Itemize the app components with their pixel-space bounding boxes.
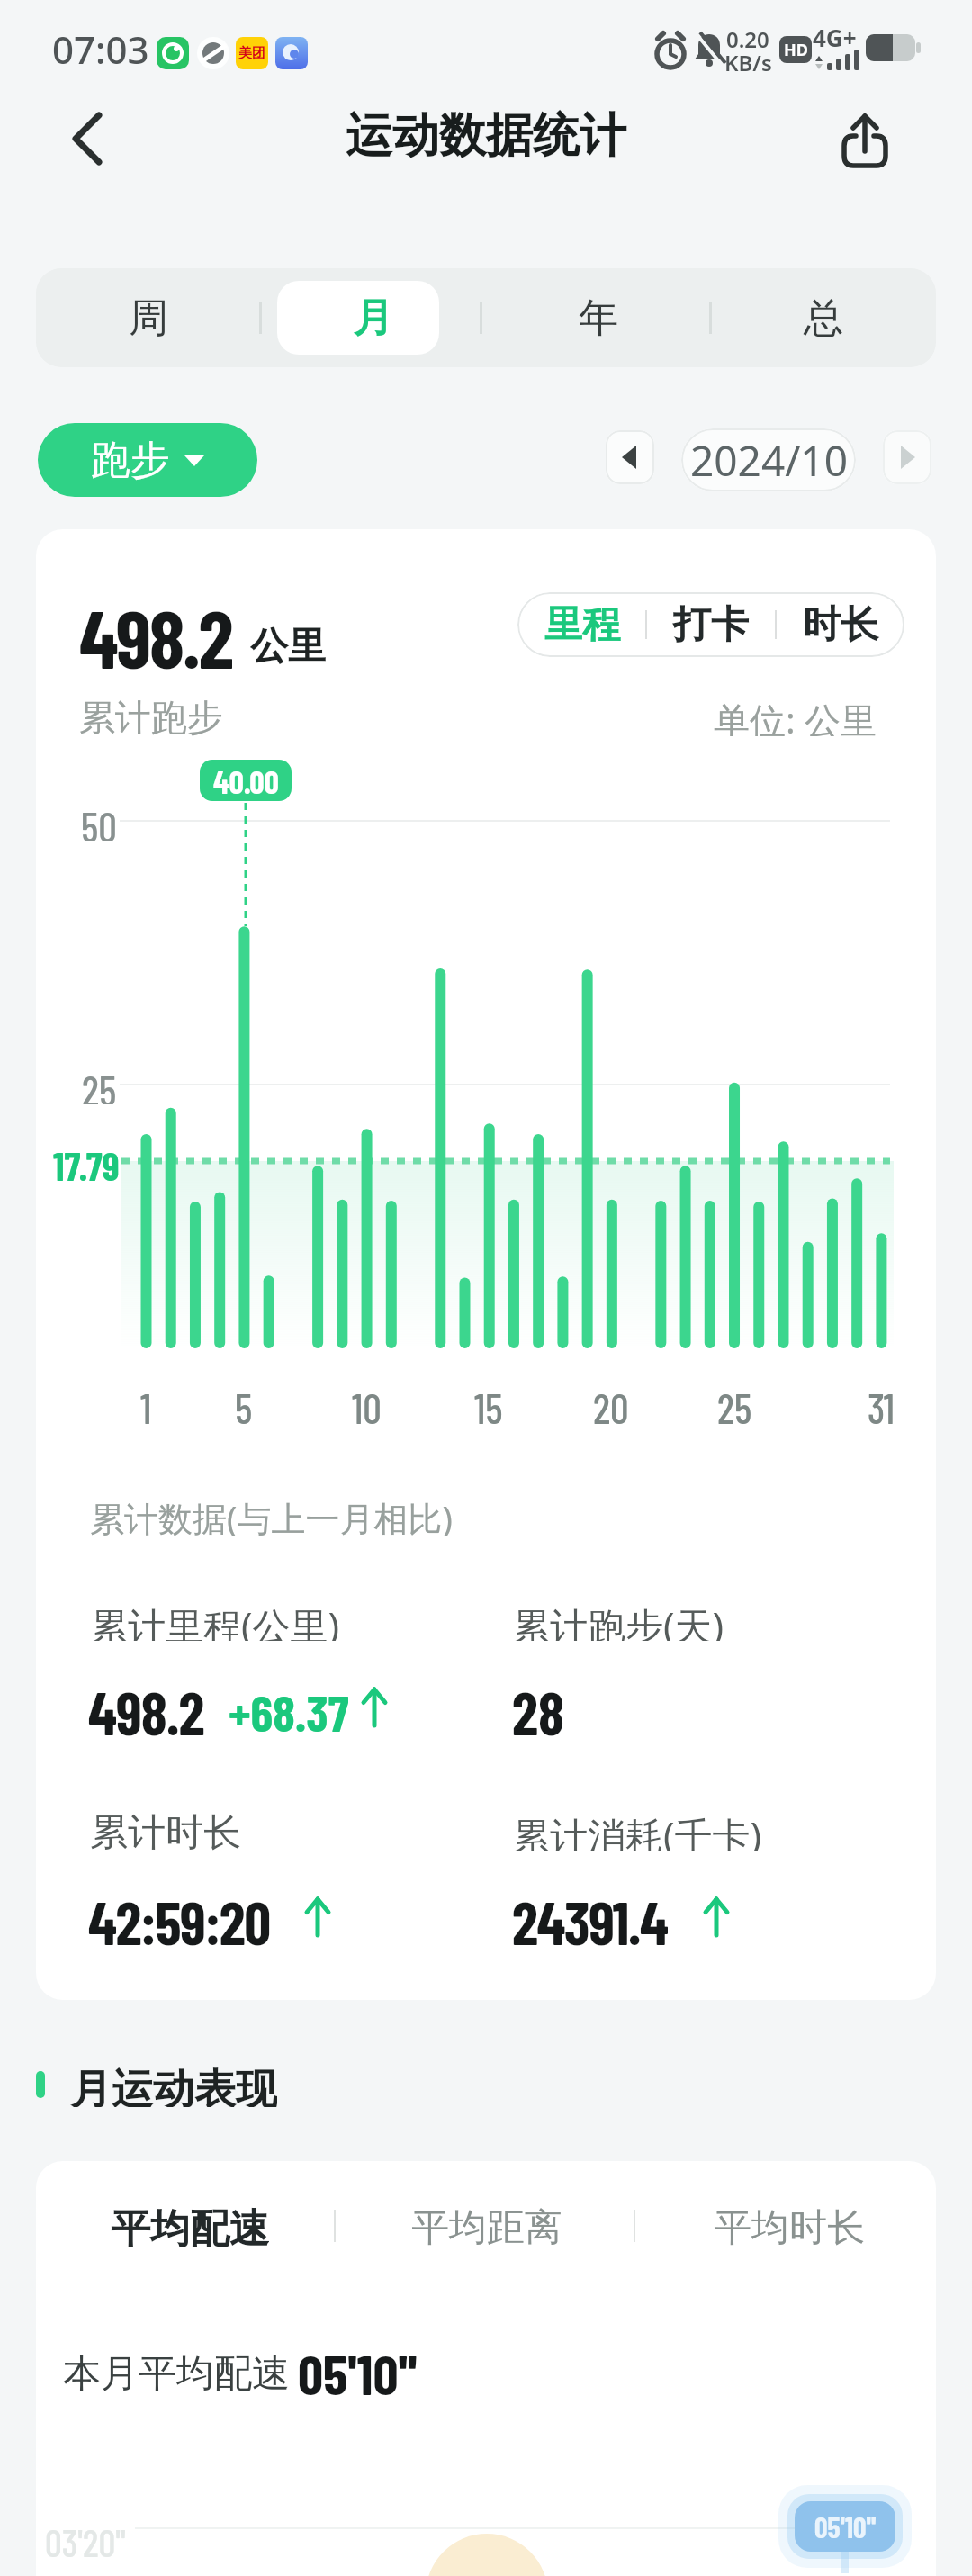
staticText: 20 <box>593 1383 629 1426</box>
button[interactable]: 里程 <box>517 592 646 657</box>
staticText: 累计数据(与上一月相比) <box>90 1494 453 1536</box>
staticText: 平均配速 <box>111 2204 269 2247</box>
staticText: 1 <box>140 1383 152 1426</box>
staticText: 累计消耗(千卡) <box>512 1809 762 1851</box>
staticText: 17.79 <box>53 1141 120 1181</box>
staticText: 2024/10 <box>690 432 848 489</box>
staticText: 31 <box>868 1383 895 1426</box>
staticText: 本月平均配速 <box>63 2350 290 2391</box>
staticText: 单位: 公里 <box>714 695 877 736</box>
button[interactable]: 月 <box>261 268 486 367</box>
staticText: 24391.4 <box>512 1886 668 1947</box>
staticText: 时长 <box>803 601 878 649</box>
button[interactable]: 2024/10 <box>681 428 856 491</box>
staticText: 累计跑步(天) <box>512 1599 724 1641</box>
staticText: 公里 <box>250 623 326 666</box>
staticText: 4G+ <box>813 22 857 49</box>
button[interactable]: 平均时长 <box>681 2204 897 2247</box>
staticText: 498.2 <box>88 1676 204 1737</box>
staticText: 平均时长 <box>714 2204 865 2247</box>
staticText: 累计跑步 <box>79 695 223 736</box>
staticText: 打卡 <box>673 601 749 649</box>
staticText: 10 <box>352 1383 382 1426</box>
button[interactable] <box>606 430 654 484</box>
button[interactable] <box>841 112 896 175</box>
staticText: 05'10'' <box>814 2509 877 2544</box>
staticText: 42:59:20 <box>88 1886 270 1947</box>
staticText: 月 <box>354 293 393 343</box>
staticText: 15 <box>474 1383 503 1426</box>
button[interactable]: 平均配速 <box>82 2204 298 2247</box>
staticText: 0.20 <box>726 24 769 50</box>
staticText: 年 <box>579 293 618 343</box>
staticText: 40.00 <box>213 761 279 800</box>
staticText: 03'20'' <box>45 2519 126 2559</box>
staticText: 平均距离 <box>411 2204 562 2247</box>
staticText: 498.2 <box>79 588 232 672</box>
button[interactable]: 打卡 <box>647 592 775 657</box>
staticText: 运动数据统计 <box>346 106 626 166</box>
button[interactable]: 时长 <box>777 592 904 657</box>
button[interactable]: 跑步 <box>38 423 257 497</box>
staticText: 跑步 <box>91 436 170 485</box>
staticText: 美团 <box>238 45 265 62</box>
staticText: 25 <box>82 1065 117 1104</box>
staticText: +68.37 <box>229 1681 349 1734</box>
staticText: 累计里程(公里) <box>90 1599 340 1641</box>
button[interactable] <box>63 110 121 167</box>
staticText: 5 <box>235 1383 253 1426</box>
staticText: 28 <box>512 1676 564 1737</box>
staticText: 50 <box>81 801 117 841</box>
staticText: 里程 <box>544 601 620 649</box>
staticText: HD <box>784 39 808 61</box>
staticText: 周 <box>129 293 168 343</box>
staticText: 07:03 <box>52 23 149 72</box>
staticText: 月运动表现 <box>70 2064 277 2107</box>
staticText: KB/s <box>724 48 772 73</box>
button[interactable]: 周 <box>36 268 261 367</box>
staticText: 累计时长 <box>90 1809 241 1851</box>
button[interactable]: 总 <box>711 268 936 367</box>
button[interactable]: 平均距离 <box>379 2204 595 2247</box>
staticText: 05'10'' <box>298 2339 418 2395</box>
button[interactable]: 年 <box>486 268 711 367</box>
staticText: 总 <box>804 293 843 343</box>
button[interactable] <box>883 430 931 484</box>
staticText: 25 <box>717 1383 752 1426</box>
